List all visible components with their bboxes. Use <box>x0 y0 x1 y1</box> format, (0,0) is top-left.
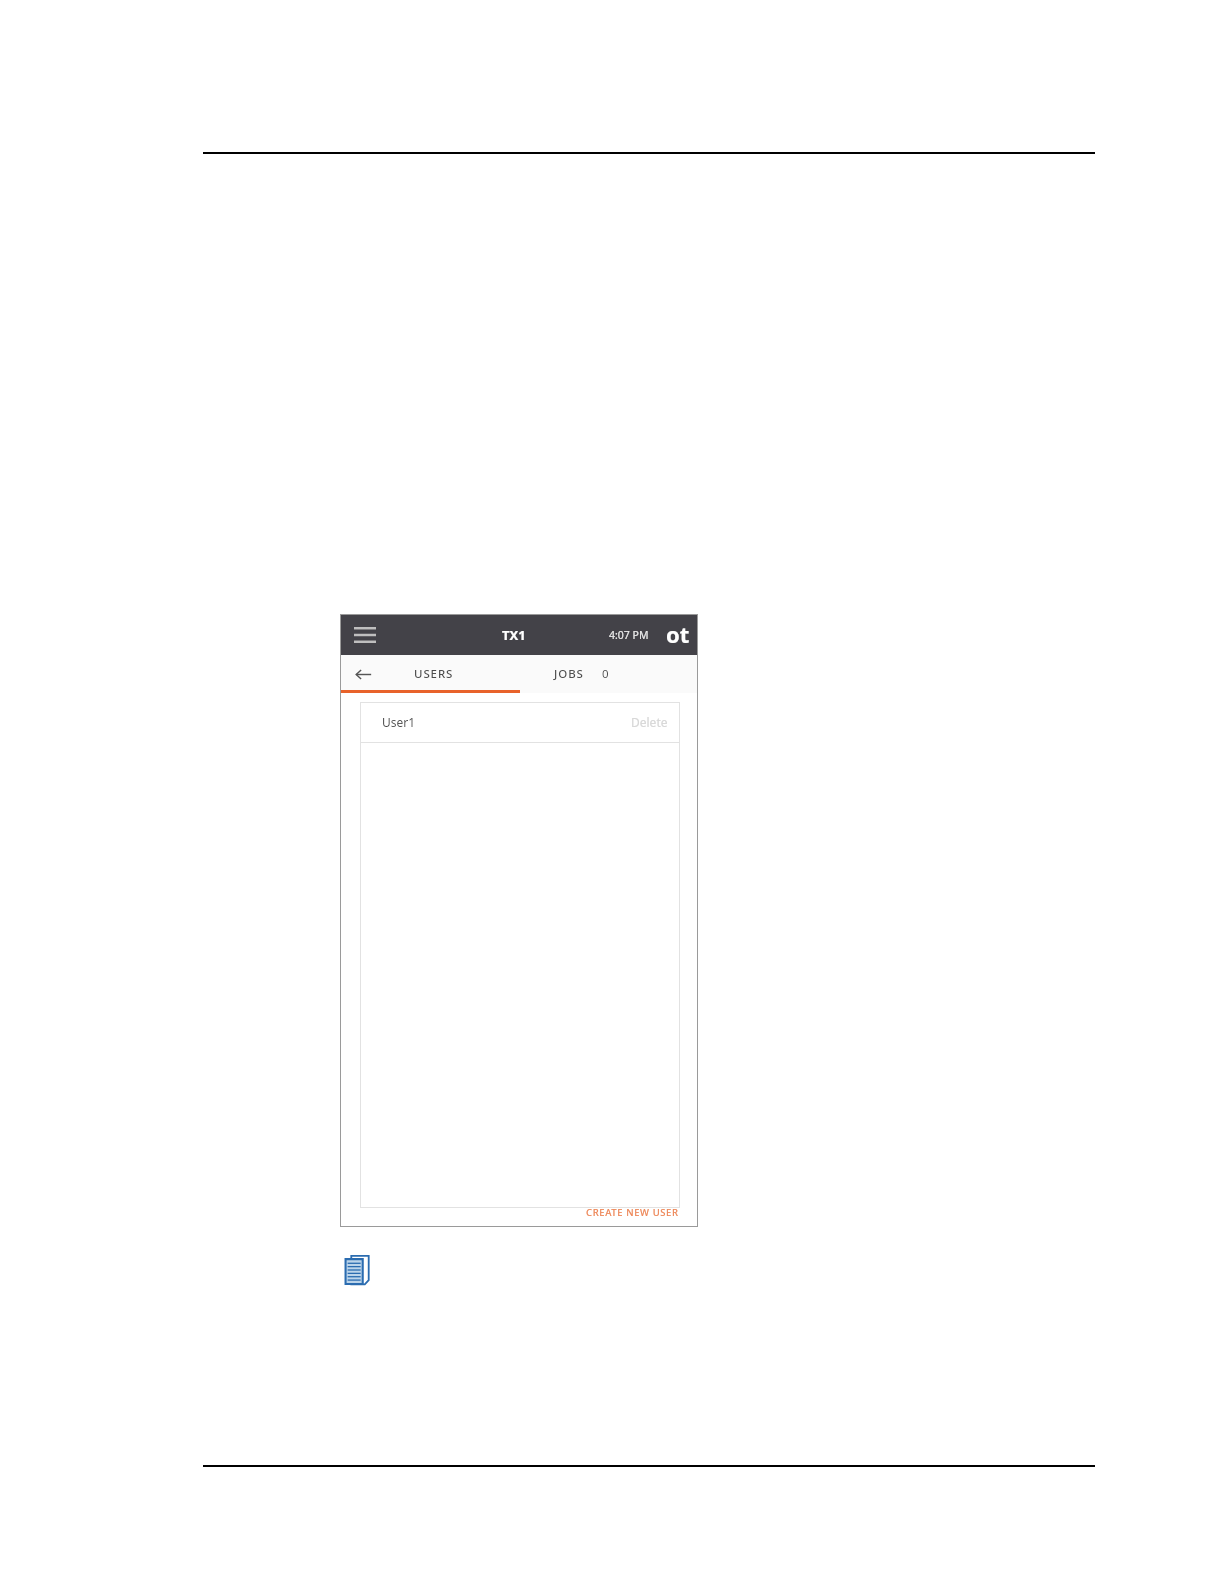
staticText: JOBS <box>554 666 584 682</box>
staticText: User1 <box>382 714 416 730</box>
staticText: 0 <box>602 666 609 682</box>
button[interactable]: Delete <box>631 702 668 742</box>
staticText: USERS <box>414 666 454 682</box>
staticText: ot <box>666 619 690 649</box>
button[interactable]: CREATE NEW USER <box>582 1203 683 1222</box>
button[interactable]: JOBS <box>519 655 698 693</box>
button[interactable]: Open navigation menu <box>348 618 382 652</box>
button[interactable]: User1 <box>360 702 680 742</box>
staticText: TX1 <box>502 626 526 644</box>
staticText: Delete <box>631 714 668 730</box>
staticText: CREATE NEW USER <box>586 1206 679 1219</box>
button[interactable]: Back <box>340 655 386 693</box>
button[interactable]: USERS <box>386 655 519 693</box>
staticText: 4:07 PM <box>609 628 649 642</box>
